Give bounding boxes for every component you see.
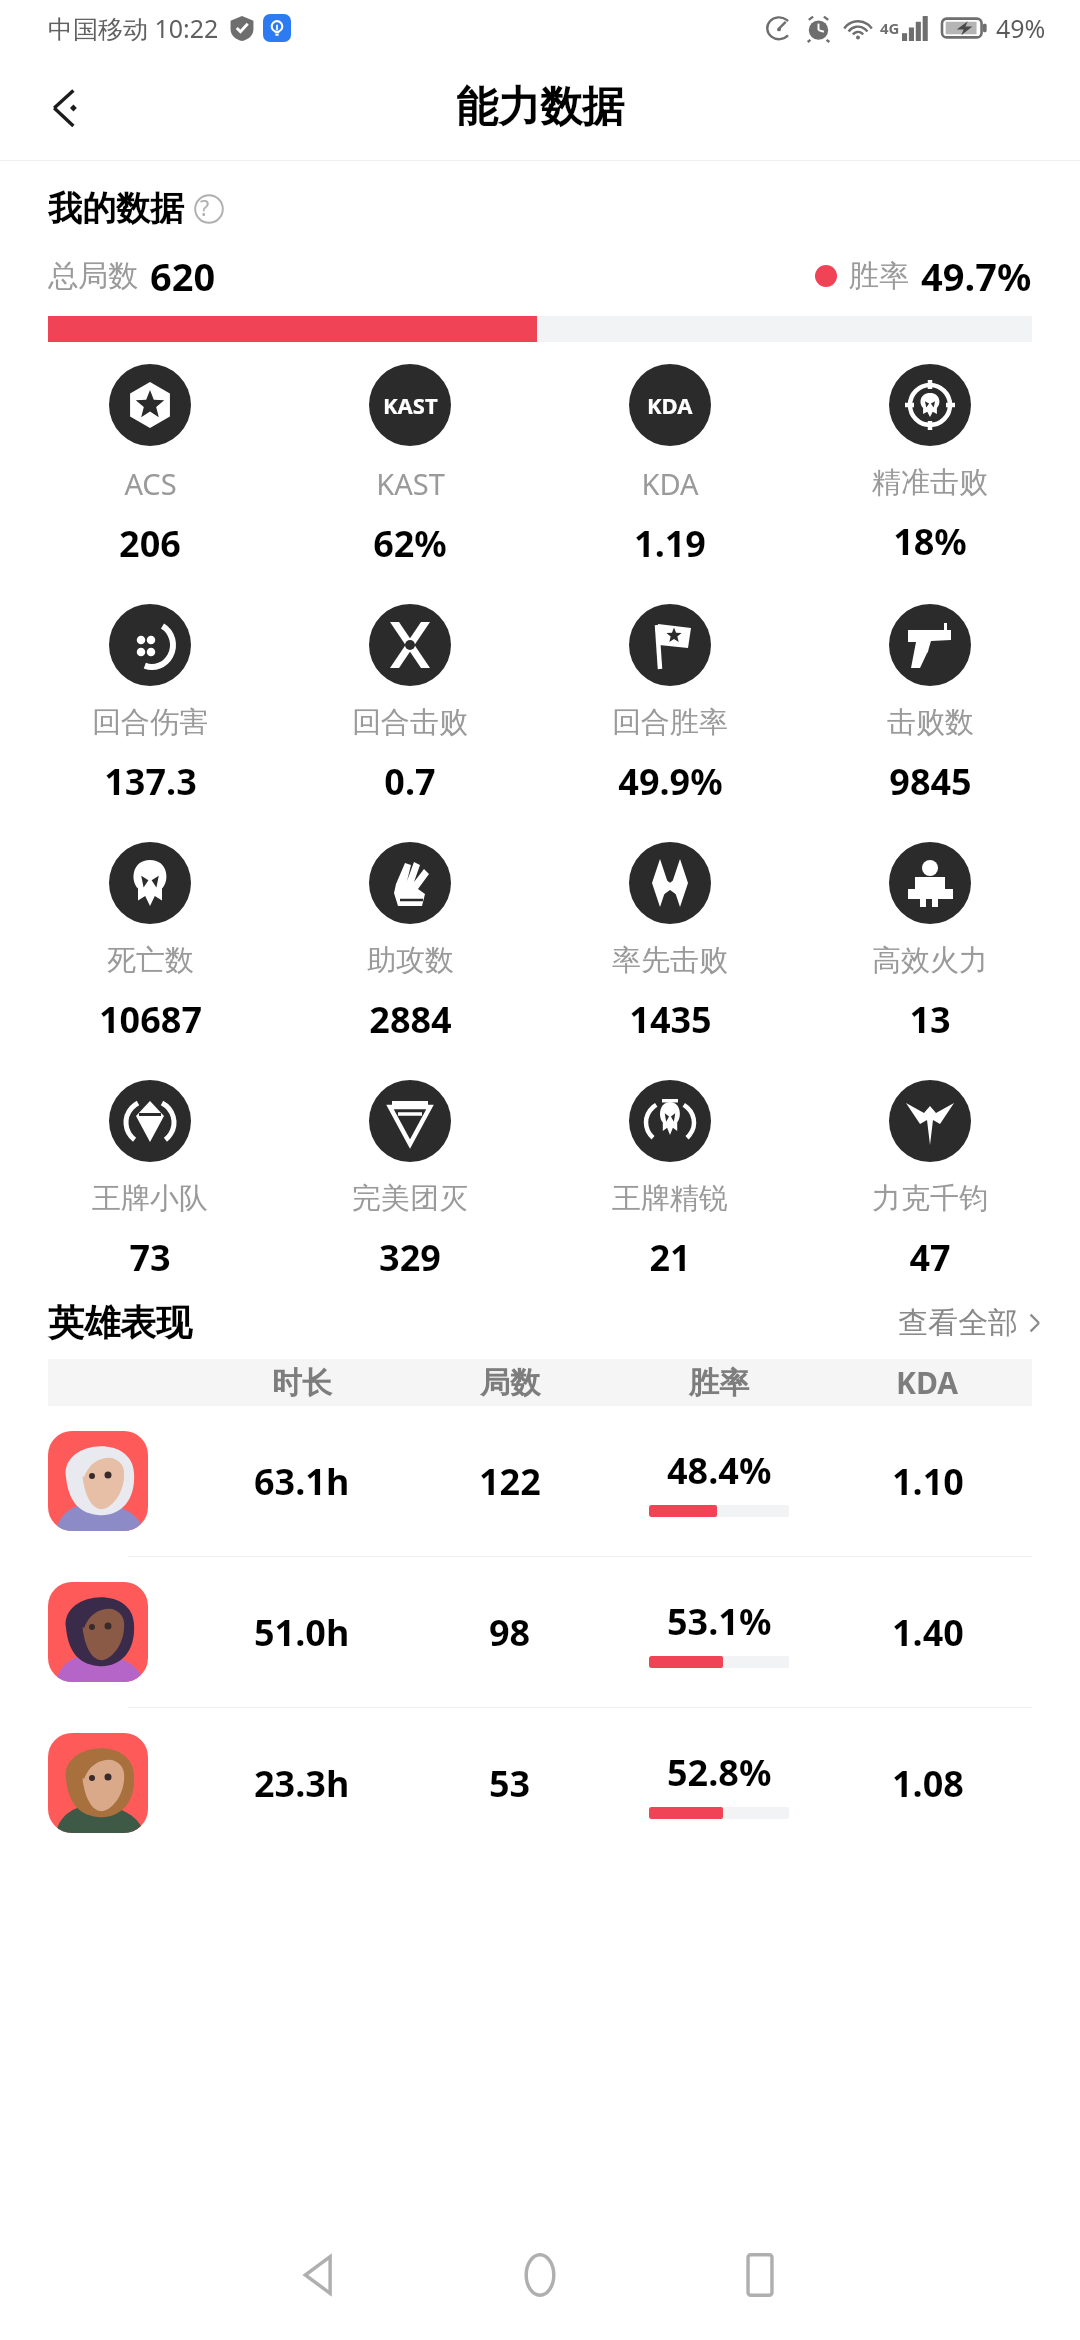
button[interactable]: KAST — [280, 364, 540, 568]
staticText: 精准击败 — [872, 464, 988, 501]
staticText: 1.10 — [892, 1457, 964, 1506]
staticText: 能力数据 — [456, 81, 624, 134]
staticText: 高效火力 — [872, 942, 988, 979]
staticText: 胜率 — [689, 1364, 749, 1402]
button[interactable]: Recents — [705, 2220, 815, 2330]
staticText: 18% — [893, 517, 967, 566]
staticText: KDA — [641, 464, 699, 503]
button[interactable]: 我的数据 — [48, 187, 1080, 230]
staticText: 局数 — [480, 1364, 540, 1402]
staticText: 回合胜率 — [612, 704, 728, 741]
button[interactable]: 回合伤害 — [20, 604, 280, 806]
staticText: 1435 — [629, 995, 712, 1044]
staticText: 2884 — [369, 995, 452, 1044]
staticText: 回合击败 — [352, 704, 468, 741]
staticText: KDA — [647, 390, 693, 420]
staticText: 51.0h — [254, 1608, 350, 1657]
staticText: 1.08 — [892, 1759, 964, 1808]
staticText: 胜率 — [849, 257, 909, 295]
staticText: 王牌精锐 — [612, 1180, 728, 1217]
staticText: 英雄表现 — [48, 1300, 192, 1345]
staticText: 63.1h — [254, 1457, 350, 1506]
staticText: 死亡数 — [107, 942, 194, 979]
button[interactable]: 查看全部 — [898, 1304, 1046, 1342]
staticText: 0.7 — [384, 757, 436, 806]
button[interactable]: 率先击败 — [540, 842, 800, 1044]
staticText: 力克千钧 — [872, 1180, 988, 1217]
staticText: 回合伤害 — [92, 704, 208, 741]
staticText: 47 — [909, 1233, 951, 1282]
staticText: 率先击败 — [612, 942, 728, 979]
staticText: 23.3h — [254, 1759, 350, 1808]
staticText: 助攻数 — [367, 942, 454, 979]
staticText: 4G — [880, 18, 900, 38]
staticText: 52.8% — [667, 1748, 772, 1797]
staticText: 53 — [489, 1759, 531, 1808]
staticText: 49.9% — [618, 757, 723, 806]
staticText: 21 — [649, 1233, 691, 1282]
staticText: 1.19 — [634, 519, 706, 568]
staticText: 49% — [996, 11, 1046, 45]
staticText: 我的数据 — [48, 187, 184, 230]
button[interactable]: 回合击败 — [280, 604, 540, 806]
staticText: 206 — [119, 519, 181, 568]
staticText: 48.4% — [667, 1446, 772, 1495]
staticText: 98 — [489, 1608, 531, 1657]
button[interactable]: ACS — [20, 364, 280, 568]
button[interactable]: 助攻数 — [280, 842, 540, 1044]
button[interactable]: Home — [485, 2220, 595, 2330]
staticText: 时长 — [272, 1364, 332, 1402]
staticText: ? — [200, 194, 210, 223]
button[interactable]: 23.3h — [48, 1708, 1032, 1858]
button[interactable]: 力克千钧 — [800, 1080, 1060, 1282]
button[interactable]: 死亡数 — [20, 842, 280, 1044]
staticText: 13 — [909, 995, 951, 1044]
button[interactable]: 回合胜率 — [540, 604, 800, 806]
button[interactable]: 精准击败 — [800, 364, 1060, 566]
button[interactable]: 63.1h — [48, 1406, 1032, 1556]
staticText: 10687 — [99, 995, 202, 1044]
staticText: 329 — [379, 1233, 441, 1282]
staticText: 击败数 — [887, 704, 974, 741]
staticText: 53.1% — [667, 1597, 772, 1646]
button[interactable]: 51.0h — [48, 1557, 1032, 1707]
staticText: 49.7% — [921, 250, 1032, 302]
staticText: 122 — [479, 1457, 541, 1506]
staticText: 王牌小队 — [92, 1180, 208, 1217]
staticText: 137.3 — [104, 757, 197, 806]
staticText: 中国移动 10:22 — [48, 11, 219, 45]
staticText: 查看全部 — [898, 1304, 1018, 1342]
staticText: 9845 — [889, 757, 972, 806]
staticText: KAST — [376, 464, 445, 503]
button[interactable]: 王牌精锐 — [540, 1080, 800, 1282]
button[interactable]: 王牌小队 — [20, 1080, 280, 1282]
button[interactable]: Back — [30, 71, 104, 145]
staticText: 完美团灭 — [352, 1180, 468, 1217]
button[interactable]: Back — [265, 2220, 375, 2330]
staticText: 620 — [150, 250, 216, 302]
button[interactable]: 击败数 — [800, 604, 1060, 806]
button[interactable]: KDA — [540, 364, 800, 568]
staticText: 73 — [129, 1233, 171, 1282]
staticText: KAST — [383, 390, 438, 420]
staticText: 1.40 — [892, 1608, 964, 1657]
staticText: ACS — [124, 464, 177, 503]
staticText: KDA — [896, 1362, 959, 1403]
staticText: 62% — [373, 519, 447, 568]
button[interactable]: 高效火力 — [800, 842, 1060, 1044]
button[interactable]: 完美团灭 — [280, 1080, 540, 1282]
staticText: 总局数 — [48, 257, 138, 295]
